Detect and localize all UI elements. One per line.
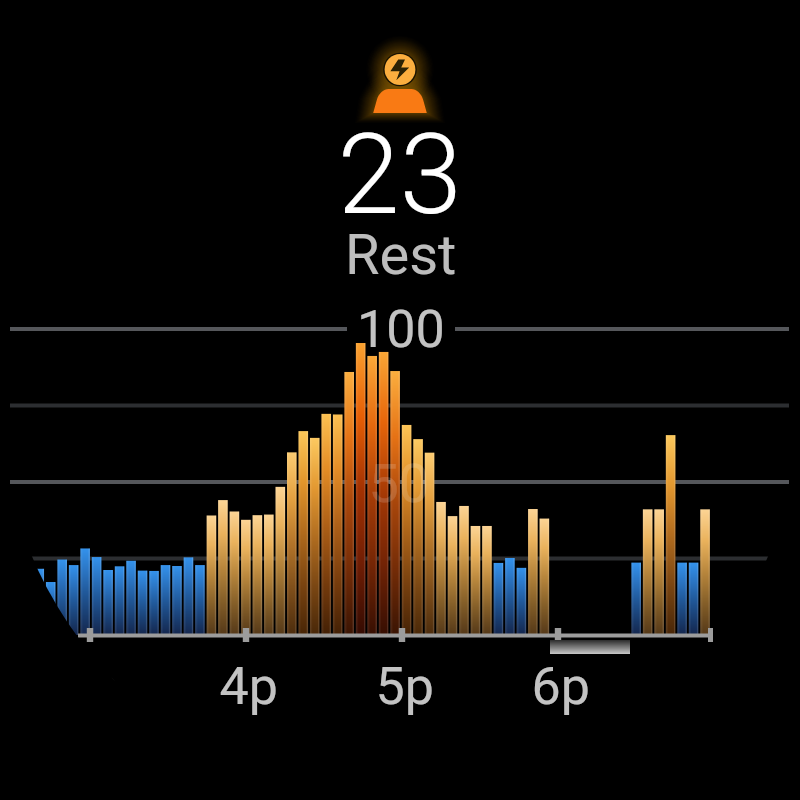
button[interactable]: Stress chart <box>0 0 800 800</box>
